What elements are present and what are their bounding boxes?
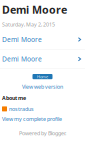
staticText: Powered by Blogger. [19, 129, 66, 137]
staticText: Demi Moore [2, 55, 42, 63]
staticText: nostradus [9, 105, 34, 112]
staticText: Demi Moore [2, 2, 67, 17]
button[interactable]: Demi Moore [0, 30, 85, 49]
staticText: Demi Moore [2, 35, 42, 44]
button[interactable]: Powered by Blogger. [19, 129, 66, 137]
button[interactable]: View my complete profile [2, 115, 62, 122]
staticText: About me [2, 94, 26, 101]
button[interactable]: nostradus [2, 105, 34, 112]
button[interactable]: Home [32, 74, 52, 79]
button[interactable]: View web version [22, 83, 63, 90]
staticText: Home [37, 74, 48, 79]
button[interactable]: Demi Moore [0, 49, 85, 68]
staticText: Saturday, May 2, 2015 [2, 21, 55, 28]
staticText: View my complete profile [2, 115, 62, 122]
staticText: View web version [22, 83, 63, 90]
